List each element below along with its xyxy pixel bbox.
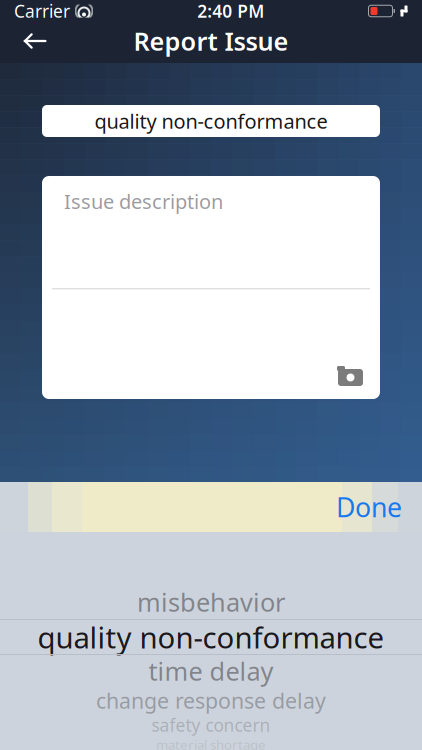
staticText: Done bbox=[336, 489, 402, 525]
staticText: quality non-conformance bbox=[94, 108, 327, 134]
button[interactable]: quality non-conformance bbox=[42, 105, 380, 137]
staticText: 2:40 PM bbox=[197, 0, 264, 22]
staticText: safety concern bbox=[151, 713, 270, 736]
staticText: change response delay bbox=[96, 686, 326, 715]
button[interactable]: Done bbox=[322, 481, 416, 533]
staticText: Issue description bbox=[64, 188, 223, 215]
staticText: quality non-conformance bbox=[37, 617, 384, 656]
staticText: misbehavior bbox=[137, 585, 285, 619]
staticText: Report Issue bbox=[133, 24, 288, 58]
button[interactable]: Back bbox=[10, 23, 60, 59]
staticText: Carrier bbox=[14, 0, 70, 22]
button[interactable]: Issue description bbox=[42, 176, 380, 399]
staticText: time delay bbox=[148, 654, 273, 688]
staticText: material shortage bbox=[156, 736, 266, 750]
